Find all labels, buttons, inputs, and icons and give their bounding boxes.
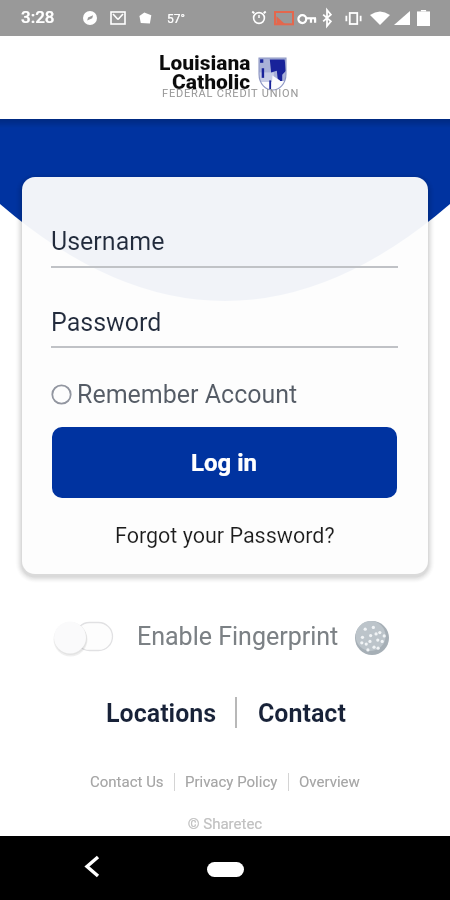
staticText: FEDERAL CREDIT UNION bbox=[162, 87, 300, 100]
staticText: Password bbox=[51, 308, 162, 337]
button[interactable]: Forgot your Password? bbox=[105, 518, 345, 553]
button[interactable]: Home bbox=[207, 862, 244, 877]
button[interactable]: Enable Fingerprint bbox=[52, 618, 116, 658]
staticText: Log in bbox=[191, 449, 258, 477]
button[interactable]: Fingerprint bbox=[355, 621, 389, 655]
button[interactable]: Overview bbox=[289, 770, 370, 794]
button[interactable]: Remember Account bbox=[48, 377, 301, 412]
staticText: 57° bbox=[167, 12, 185, 26]
button[interactable]: Locations bbox=[92, 685, 231, 742]
staticText: Catholic bbox=[172, 70, 251, 95]
button[interactable]: Privacy Policy bbox=[175, 770, 288, 794]
button[interactable]: Log in bbox=[52, 427, 397, 498]
staticText: Username bbox=[51, 227, 165, 256]
button[interactable]: Contact Us bbox=[80, 770, 174, 794]
staticText: Remember Account bbox=[77, 380, 298, 409]
staticText: Enable Fingerprint bbox=[137, 622, 339, 651]
staticText: 3:28 bbox=[21, 7, 55, 27]
button[interactable]: Back bbox=[72, 846, 112, 886]
staticText: © Sharetec bbox=[0, 815, 450, 833]
button[interactable]: Contact bbox=[244, 685, 360, 742]
staticText: Louisiana bbox=[159, 51, 251, 76]
